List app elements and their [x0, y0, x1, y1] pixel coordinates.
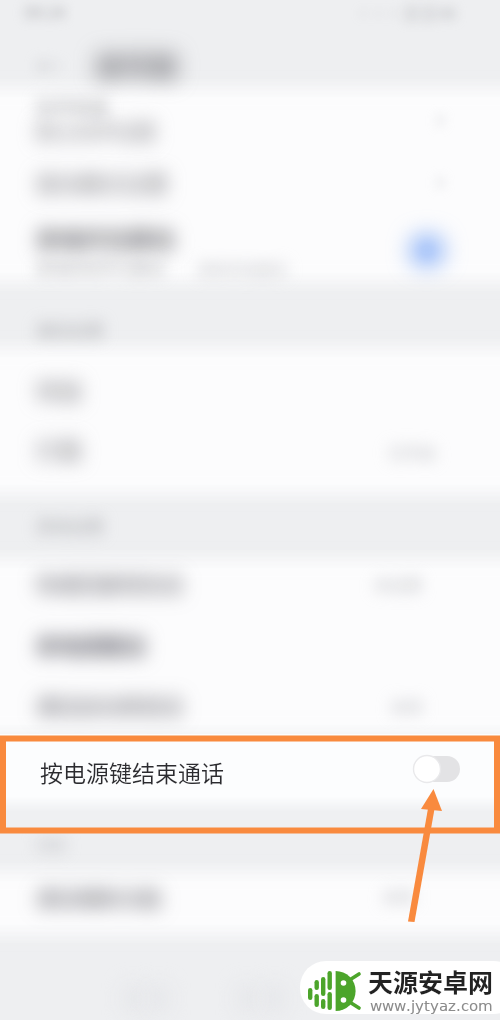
button[interactable]	[0, 734, 500, 830]
